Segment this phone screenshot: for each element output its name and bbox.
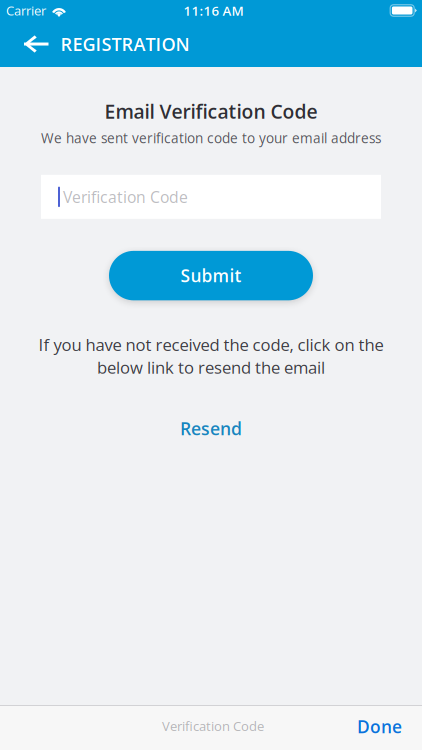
button[interactable]: Resend [170, 411, 252, 445]
button[interactable]: Done [347, 707, 412, 746]
staticText: We have sent verification code to your e… [41, 129, 381, 147]
staticText: Done [357, 715, 402, 738]
staticText: If you have not received the code, click… [38, 333, 383, 356]
staticText: Resend [180, 416, 242, 440]
staticText: below link to resend the email [97, 356, 325, 378]
button[interactable]: Submit [109, 251, 313, 300]
staticText: Verification Code [162, 717, 264, 735]
staticText: Email Verification Code [104, 98, 317, 124]
staticText: Verification Code [63, 186, 188, 207]
staticText: Submit [180, 264, 241, 287]
staticText: REGISTRATION [60, 32, 189, 56]
staticText: Carrier [6, 2, 46, 19]
staticText: 11:16 AM [183, 1, 243, 20]
button[interactable]: Back [0, 21, 60, 67]
